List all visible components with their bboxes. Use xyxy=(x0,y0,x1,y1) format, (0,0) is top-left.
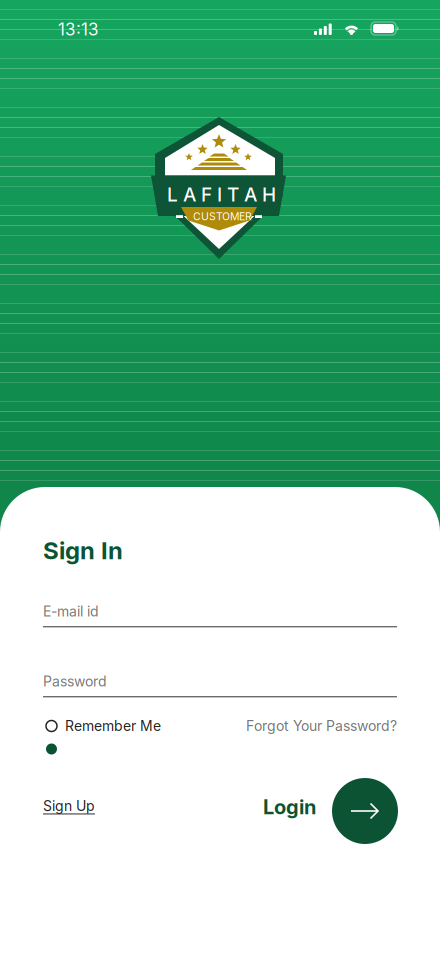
button[interactable]: Sign in xyxy=(332,778,398,844)
staticText: Forgot Your Password? xyxy=(246,717,397,734)
staticText: Password xyxy=(43,673,107,690)
button[interactable]: Password xyxy=(43,672,397,697)
button[interactable]: Sign In xyxy=(43,536,123,565)
staticText: 13:13 xyxy=(58,19,99,40)
button[interactable]: Remember Me xyxy=(46,716,161,736)
staticText: Sign In xyxy=(43,536,123,565)
staticText: CUSTOMER xyxy=(193,210,252,223)
button[interactable]: Sign Up xyxy=(43,796,95,816)
button[interactable]: Option selected xyxy=(41,739,61,759)
button[interactable]: E-mail id xyxy=(43,602,397,627)
button[interactable]: Forgot Your Password? xyxy=(243,716,397,736)
button[interactable]: Login xyxy=(263,793,316,821)
staticText: L A F I T A H xyxy=(167,183,276,206)
staticText: E-mail id xyxy=(43,603,99,620)
staticText: Remember Me xyxy=(65,717,161,734)
staticText: Sign Up xyxy=(43,797,95,814)
staticText: Login xyxy=(263,795,316,819)
